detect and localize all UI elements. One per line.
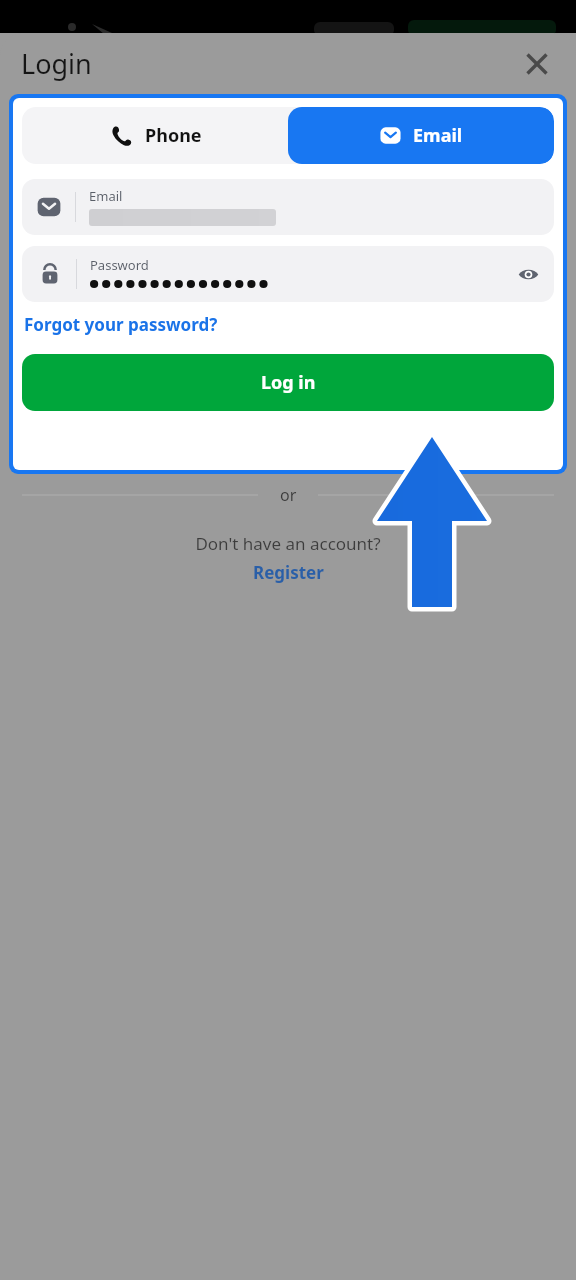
button[interactable]: Email [22, 179, 554, 235]
button[interactable]: Phone [22, 107, 288, 164]
staticText: Don't have an account? [0, 532, 576, 555]
button[interactable]: Show password [506, 252, 550, 296]
button[interactable]: Password [22, 246, 554, 302]
staticText: Email [413, 123, 463, 148]
staticText: Log in [261, 370, 316, 395]
button[interactable]: Log in [22, 354, 554, 411]
staticText: or [280, 484, 297, 506]
staticText: Phone [145, 123, 202, 148]
staticText: Login [21, 45, 92, 82]
staticText: Email [89, 187, 123, 205]
button[interactable]: Forgot your password? [24, 313, 218, 336]
button[interactable]: Register [253, 561, 324, 584]
button[interactable]: Close [520, 47, 554, 81]
staticText: Password [90, 256, 149, 274]
button[interactable]: Email [288, 107, 554, 164]
